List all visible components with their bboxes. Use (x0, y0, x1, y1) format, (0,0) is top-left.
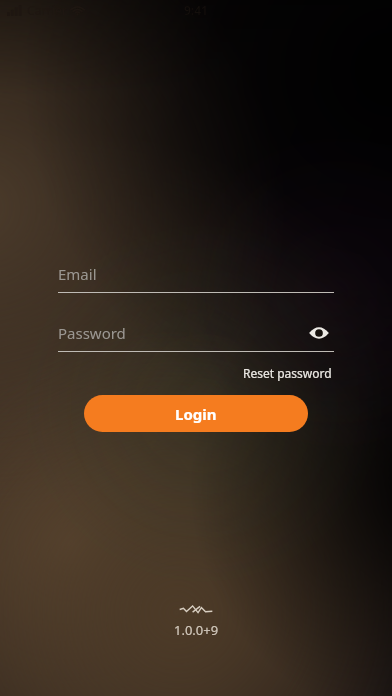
staticText: 9:41 (184, 2, 208, 18)
staticText: 1.0.0+9 (174, 621, 219, 639)
staticText: Reset password (243, 365, 332, 381)
button[interactable]: Email (58, 256, 334, 292)
staticText: Login (175, 404, 217, 424)
button[interactable]: Password (58, 315, 334, 351)
staticText: Password (58, 323, 126, 343)
button[interactable]: Show password (304, 318, 334, 348)
button[interactable]: Login (84, 395, 308, 432)
button[interactable]: Reset password (241, 362, 334, 384)
staticText: Email (58, 264, 97, 284)
